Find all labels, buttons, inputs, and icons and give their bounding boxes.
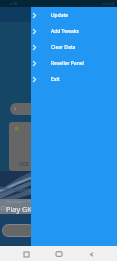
button[interactable]: Clear Data <box>31 39 117 55</box>
button[interactable]: Home <box>52 247 66 261</box>
staticText: Update <box>51 12 69 19</box>
button[interactable]: Add Tweaks <box>31 23 117 39</box>
button[interactable]: Reseller Panel <box>31 55 117 71</box>
button[interactable]: Back <box>84 247 98 261</box>
staticText: Play GK <box>6 204 32 214</box>
staticText: Developer: Pl <box>6 199 31 204</box>
button[interactable]: Recents <box>19 247 33 261</box>
staticText: OCK <box>19 161 30 168</box>
staticText: Reseller Panel <box>51 60 84 67</box>
staticText: Add Tweaks <box>51 28 79 35</box>
staticText: Clear Data <box>51 44 76 51</box>
staticText: Exit <box>51 76 60 83</box>
button[interactable]: Update <box>31 7 117 23</box>
button[interactable]: Exit <box>31 71 117 87</box>
